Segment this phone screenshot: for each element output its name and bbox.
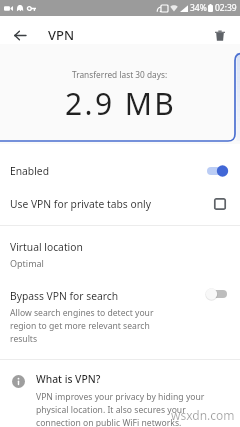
staticText: Use VPN for private tabs only xyxy=(10,197,151,211)
staticText: wsxdn.com xyxy=(171,407,235,423)
button[interactable]: Enabled xyxy=(0,153,240,189)
staticText: 02:39 xyxy=(215,2,237,14)
button[interactable]: Back xyxy=(8,23,32,47)
staticText: Allow search engines to detect your regi… xyxy=(10,307,164,345)
button[interactable]: Virtual location xyxy=(0,233,240,271)
staticText: Enabled xyxy=(10,164,49,178)
staticText: Transferred last 30 days: xyxy=(72,69,168,80)
button[interactable]: Delete xyxy=(208,23,232,47)
staticText: VPN improves your privacy by hiding your… xyxy=(36,391,231,427)
staticText: VPN xyxy=(48,26,75,44)
staticText: Virtual location xyxy=(10,240,83,254)
staticText: 2.9 MB xyxy=(65,83,177,124)
button[interactable]: Bypass VPN for search xyxy=(0,285,240,347)
staticText: Bypass VPN for search xyxy=(10,289,119,303)
staticText: 34% xyxy=(190,2,207,14)
staticText: What is VPN? xyxy=(36,372,101,386)
staticText: Optimal xyxy=(10,257,44,269)
button[interactable]: Use VPN for private tabs only xyxy=(0,186,240,221)
